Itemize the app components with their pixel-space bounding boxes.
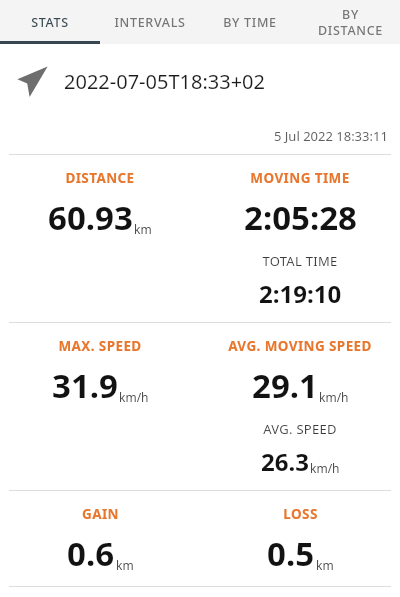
- staticText: 26.3: [261, 445, 309, 478]
- staticText: 2:19:10: [259, 277, 342, 310]
- staticText: DISTANCE: [65, 169, 135, 187]
- staticText: 0.5: [267, 531, 315, 576]
- staticText: 0.6: [67, 531, 115, 576]
- staticText: MAX. SPEED: [58, 337, 142, 355]
- staticText: 2:05:28: [244, 195, 357, 240]
- button[interactable]: LOSS: [200, 491, 400, 586]
- other: Navigation: [12, 60, 54, 102]
- button[interactable]: TOTAL TIME: [200, 250, 400, 322]
- staticText: STATS: [31, 14, 69, 31]
- staticText: km/h: [310, 460, 340, 476]
- button[interactable]: INTERVALS: [100, 0, 200, 44]
- button[interactable]: MAX. SPEED: [0, 323, 200, 418]
- button[interactable]: MOVING TIME: [200, 155, 400, 250]
- staticText: TOTAL TIME: [262, 252, 338, 270]
- button[interactable]: AVG. SPEED: [200, 418, 400, 490]
- staticText: km/h: [119, 389, 149, 405]
- staticText: 2022-07-05T18:33+02: [64, 68, 265, 95]
- staticText: km/h: [319, 389, 349, 405]
- staticText: km: [316, 557, 334, 573]
- staticText: 29.1: [252, 363, 318, 408]
- staticText: km: [116, 557, 134, 573]
- staticText: 31.9: [52, 363, 118, 408]
- button[interactable]: STATS: [0, 0, 100, 44]
- staticText: AVG. SPEED: [263, 420, 337, 438]
- staticText: BY TIME: [223, 14, 277, 31]
- button[interactable]: DISTANCE: [0, 155, 200, 250]
- button[interactable]: AVG. MOVING SPEED: [200, 323, 400, 418]
- staticText: INTERVALS: [114, 14, 186, 31]
- staticText: AVG. MOVING SPEED: [228, 337, 372, 355]
- button[interactable]: GAIN: [0, 491, 200, 586]
- staticText: 5 Jul 2022 18:33:11: [274, 127, 388, 145]
- staticText: 60.93: [48, 195, 133, 240]
- staticText: LOSS: [283, 505, 318, 523]
- staticText: MOVING TIME: [250, 169, 350, 187]
- staticText: km: [134, 221, 152, 237]
- staticText: GAIN: [82, 505, 119, 523]
- button[interactable]: BY TIME: [200, 0, 300, 44]
- button[interactable]: Navigation: [0, 44, 400, 118]
- button[interactable]: BY DISTANCE: [300, 0, 400, 44]
- staticText: BY DISTANCE: [318, 6, 383, 38]
